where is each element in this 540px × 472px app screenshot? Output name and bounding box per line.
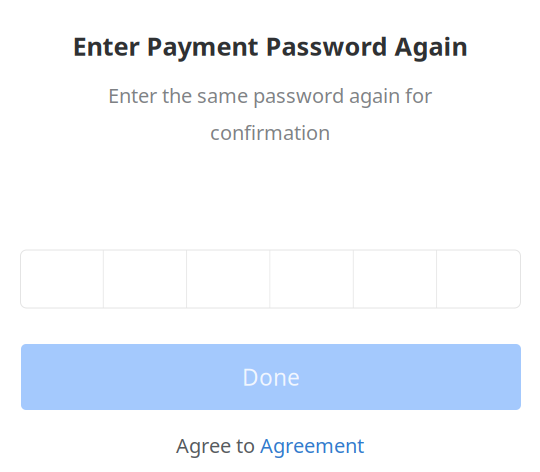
button[interactable]: Agreement bbox=[260, 432, 364, 459]
staticText: Done bbox=[242, 362, 300, 392]
staticText: Enter Payment Password Again bbox=[72, 29, 467, 63]
staticText: Agree to bbox=[176, 432, 260, 459]
staticText: Enter the same password again for bbox=[108, 82, 432, 109]
button[interactable]: Done bbox=[21, 344, 521, 410]
staticText: Agreement bbox=[260, 432, 364, 459]
staticText: confirmation bbox=[210, 119, 330, 146]
button[interactable]: Payment password bbox=[20, 250, 520, 308]
